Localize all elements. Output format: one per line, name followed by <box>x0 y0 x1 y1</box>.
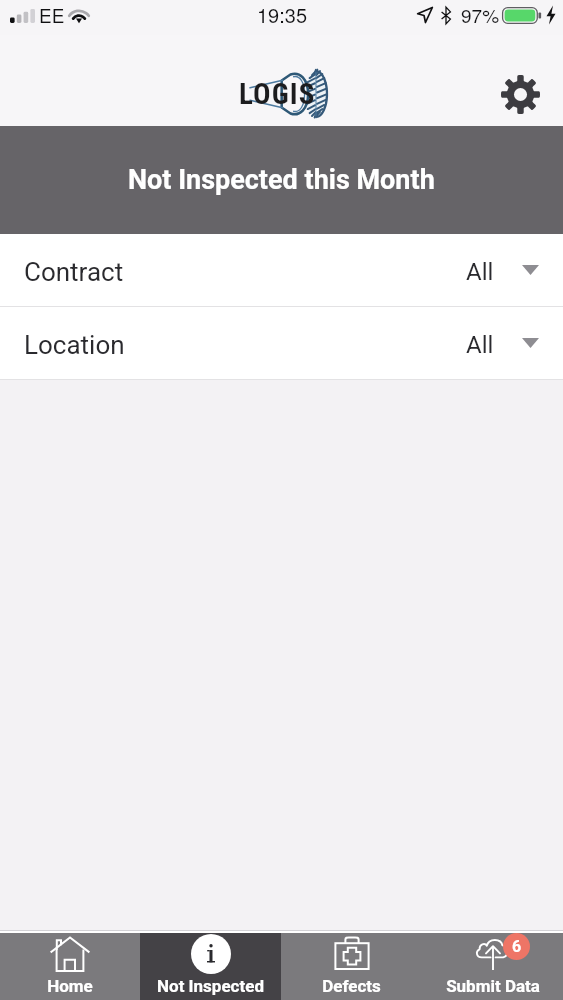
button[interactable]: Not Inspected <box>140 933 281 1000</box>
button[interactable]: Home <box>0 933 140 1000</box>
staticText: 19:35 <box>257 0 308 29</box>
staticText: Submit Data <box>446 976 540 996</box>
staticText: EE <box>39 1 65 28</box>
staticText: 6 <box>512 937 522 956</box>
staticText: All <box>466 258 494 286</box>
staticText: Location <box>24 330 125 360</box>
button[interactable]: Location <box>0 307 563 379</box>
button[interactable]: Defects <box>281 933 422 1000</box>
button[interactable]: Contract <box>0 234 563 306</box>
button[interactable]: 6 <box>422 933 563 1000</box>
staticText: Home <box>47 976 93 996</box>
staticText: Not Inspected <box>157 976 264 996</box>
button[interactable]: Settings <box>496 70 544 118</box>
staticText: Defects <box>322 976 381 996</box>
staticText: Not Inspected this Month <box>128 164 435 196</box>
staticText: 97% <box>461 1 500 28</box>
staticText: LOGIS <box>239 77 316 111</box>
staticText: Contract <box>24 257 124 287</box>
staticText: All <box>466 331 494 359</box>
